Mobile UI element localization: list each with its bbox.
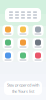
button[interactable]: App tile (2, 25, 13, 36)
button[interactable]: App tile (32, 51, 43, 62)
button[interactable]: App tile (17, 25, 28, 36)
staticText: Stay prepared with (7, 82, 39, 87)
button[interactable]: App tile (17, 51, 28, 62)
button[interactable]: App tile (2, 38, 13, 49)
button[interactable]: App tile (32, 38, 43, 49)
staticText: the Yours list (12, 88, 34, 94)
button[interactable]: App tile (2, 51, 13, 62)
button[interactable]: App tile (17, 38, 28, 49)
button[interactable]: App tile (32, 25, 43, 36)
